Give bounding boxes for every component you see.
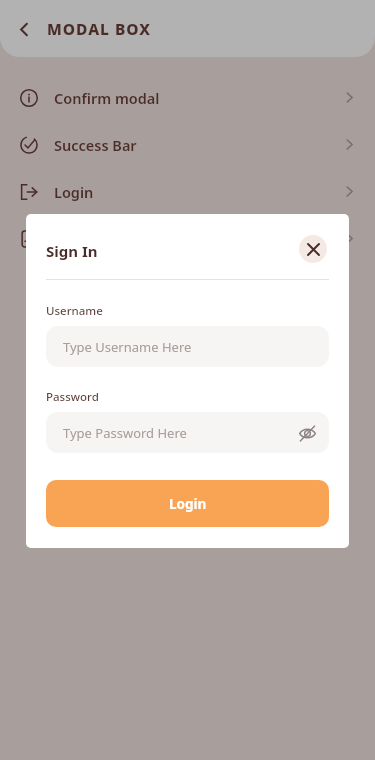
button[interactable]: Show password [294, 420, 320, 446]
button[interactable]: Login [46, 480, 329, 527]
button[interactable]: Type Password Here [46, 412, 329, 453]
staticText: Login [169, 495, 207, 513]
staticText: Success Bar [54, 135, 137, 155]
staticText: Login [54, 182, 94, 202]
button[interactable]: Success Bar [0, 121, 375, 168]
button[interactable]: Login [0, 168, 375, 215]
staticText: MODAL BOX [47, 18, 152, 39]
button[interactable]: Back [4, 9, 44, 49]
staticText: Bottom Sheet [54, 229, 151, 249]
staticText: Type Password Here [63, 424, 187, 442]
button[interactable]: Bottom Sheet [0, 215, 375, 262]
button[interactable]: Close [299, 235, 327, 263]
staticText: Type Username Here [63, 338, 192, 356]
button[interactable]: Type Username Here [46, 326, 329, 367]
staticText: Sign In [46, 241, 98, 261]
staticText: Password [46, 389, 99, 405]
staticText: Username [46, 303, 103, 319]
button[interactable]: Confirm modal [0, 74, 375, 121]
staticText: Confirm modal [54, 88, 160, 108]
